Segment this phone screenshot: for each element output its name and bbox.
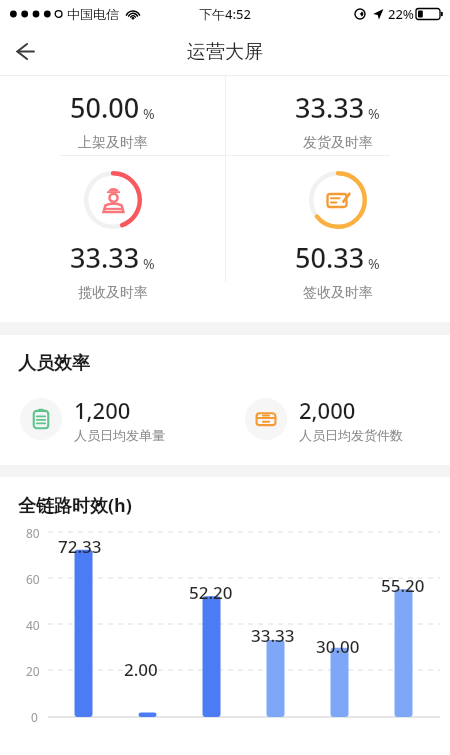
staticText: 60 xyxy=(26,571,40,587)
staticText: 人员日均发单量 xyxy=(74,427,165,443)
staticText: 50.00 xyxy=(70,89,140,126)
staticText: 33.33 xyxy=(251,624,295,647)
staticText: 55.20 xyxy=(381,574,425,597)
staticText: 30.00 xyxy=(316,635,360,658)
button[interactable]: 50.33 xyxy=(225,156,450,322)
staticText: 揽收及时率 xyxy=(78,284,148,302)
button[interactable]: 33.33 xyxy=(225,76,450,155)
button[interactable]: 1,200 xyxy=(0,395,225,443)
staticText: % xyxy=(368,254,380,273)
staticText: % xyxy=(368,104,380,123)
staticText: 33.33 xyxy=(295,89,365,126)
staticText: 0 xyxy=(31,709,38,725)
staticText: 50.33 xyxy=(295,239,365,276)
staticText: 40 xyxy=(26,617,40,633)
staticText: 运营大屏 xyxy=(187,40,263,64)
staticText: % xyxy=(143,254,155,273)
staticText: 22% xyxy=(388,5,414,23)
staticText: 1,200 xyxy=(74,395,131,425)
staticText: 下午4:52 xyxy=(199,5,251,23)
staticText: 20 xyxy=(26,663,40,679)
staticText: 上架及时率 xyxy=(78,134,148,152)
staticText: 80 xyxy=(26,525,40,541)
staticText: 全链路时效(h) xyxy=(18,493,132,518)
staticText: 人员效率 xyxy=(18,352,90,375)
staticText: 签收及时率 xyxy=(303,284,373,302)
staticText: % xyxy=(143,104,155,123)
staticText: 72.33 xyxy=(58,535,102,558)
staticText: 中国电信 xyxy=(67,6,119,22)
staticText: 2.00 xyxy=(124,658,158,681)
button[interactable]: 2,000 xyxy=(225,395,450,443)
staticText: 发货及时率 xyxy=(303,134,373,152)
button[interactable]: 50.00 xyxy=(0,76,225,155)
staticText: 人员日均发货件数 xyxy=(299,427,403,443)
button[interactable]: 33.33 xyxy=(0,156,225,322)
button[interactable]: Back xyxy=(0,28,48,75)
staticText: 33.33 xyxy=(70,239,140,276)
staticText: 2,000 xyxy=(299,395,356,425)
staticText: 52.20 xyxy=(189,581,233,604)
